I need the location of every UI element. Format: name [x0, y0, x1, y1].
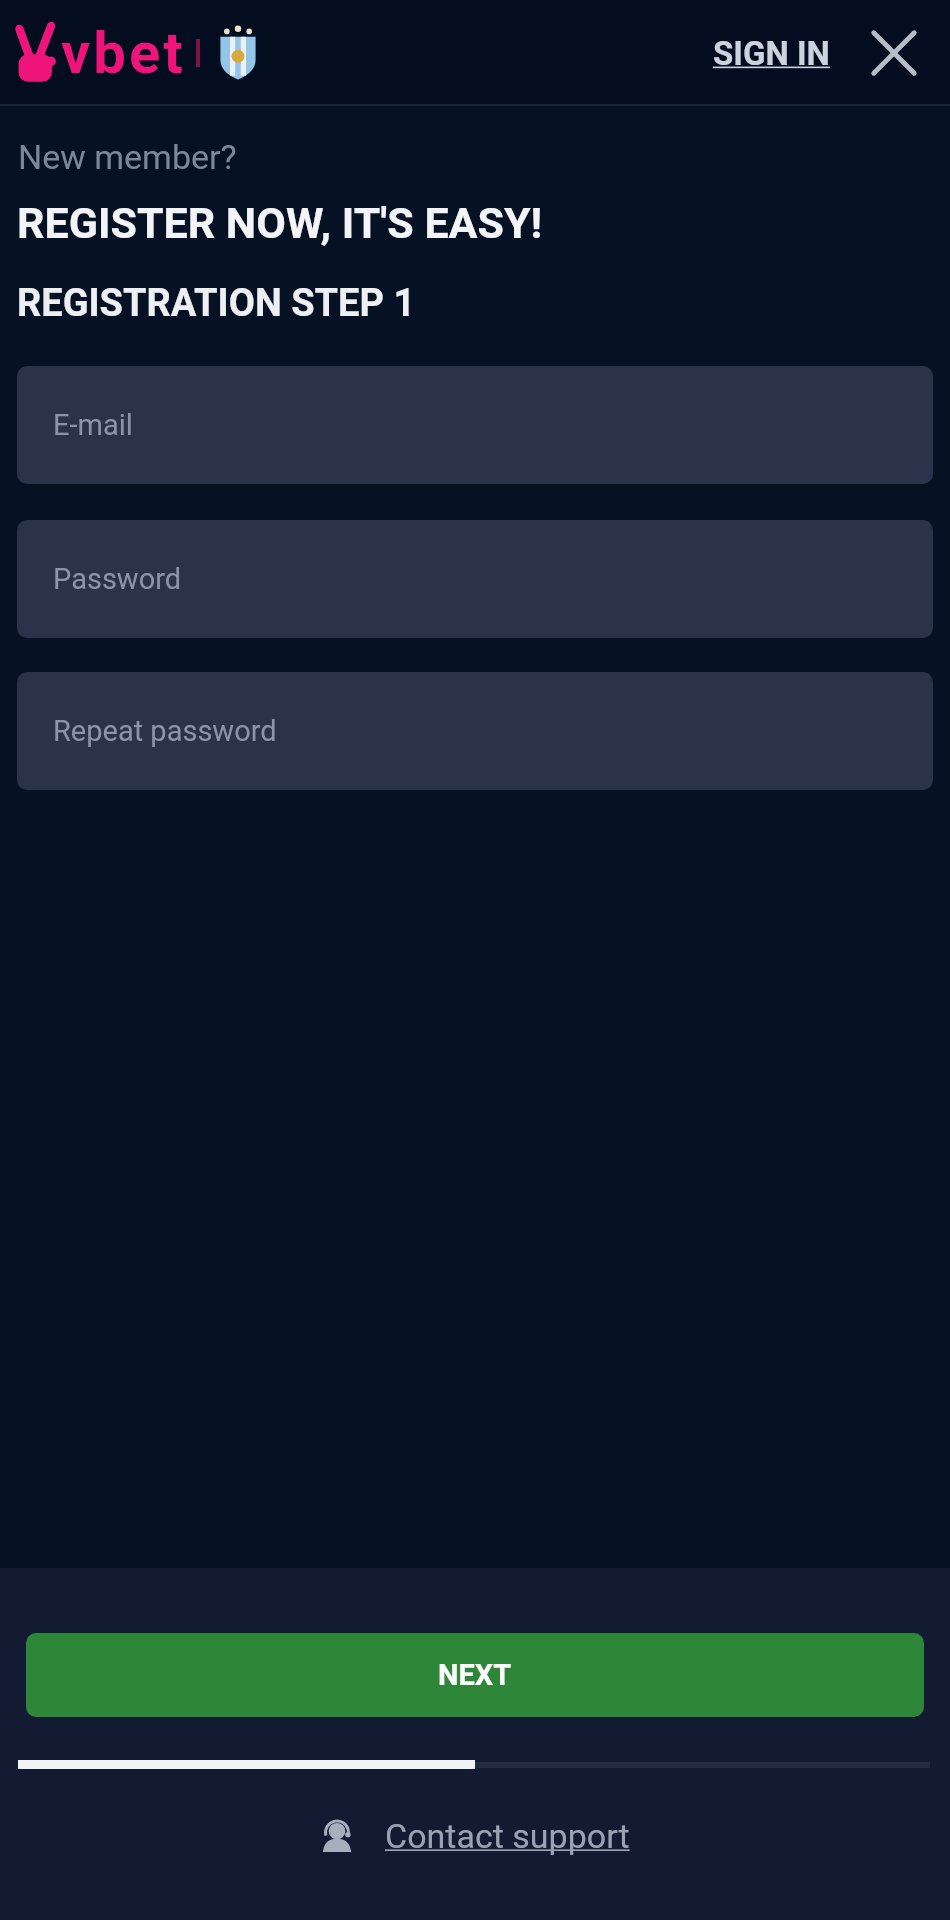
staticText: vbet	[61, 19, 186, 87]
staticText: Contact support	[385, 1816, 630, 1856]
staticText: SIGN IN	[713, 34, 830, 73]
button[interactable]: NEXT	[26, 1633, 924, 1717]
button[interactable]: SIGN IN	[713, 34, 830, 73]
staticText: New member?	[18, 137, 237, 177]
staticText: NEXT	[438, 1658, 512, 1692]
staticText: REGISTRATION STEP 1	[17, 281, 416, 326]
button[interactable]	[868, 27, 920, 79]
staticText: E-mail	[53, 408, 133, 442]
staticText: Repeat password	[53, 714, 277, 748]
button[interactable]: Repeat password	[17, 672, 933, 790]
staticText: Password	[53, 562, 182, 596]
button[interactable]: Password	[17, 520, 933, 638]
button[interactable]: E-mail	[17, 366, 933, 484]
button[interactable]: Contact support	[321, 1816, 630, 1856]
staticText: REGISTER NOW, IT'S EASY!	[17, 198, 543, 248]
